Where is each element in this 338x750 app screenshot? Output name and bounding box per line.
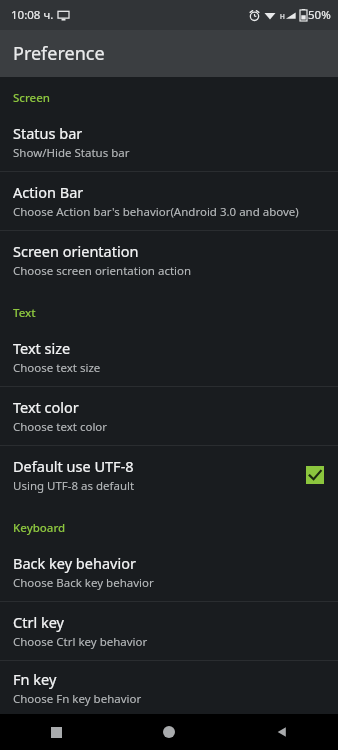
staticText: Default use UTF-8 (13, 456, 134, 476)
button[interactable]: Text color (0, 387, 338, 445)
button[interactable]: Text size (0, 328, 338, 386)
button[interactable]: Default use UTF-8 (0, 446, 338, 504)
staticText: Fn key (13, 669, 57, 689)
staticText: Using UTF-8 as default (13, 478, 135, 494)
button[interactable]: Default use UTF-8 checkbox, checked (306, 466, 324, 484)
staticText: Back key behavior (13, 553, 136, 573)
staticText: Preference (13, 41, 105, 66)
button[interactable]: Recent apps (40, 716, 72, 748)
button[interactable]: Ctrl key (0, 602, 338, 660)
staticText: Text size (13, 338, 71, 358)
staticText: Choose Fn key behavior (13, 691, 142, 707)
staticText: Choose Back key behavior (13, 575, 154, 591)
staticText: Status bar (13, 123, 83, 143)
staticText: Choose text color (13, 419, 108, 435)
button[interactable]: Action Bar (0, 172, 338, 230)
staticText: Choose text size (13, 360, 101, 376)
staticText: 50% (308, 7, 331, 23)
button[interactable]: Back key behavior (0, 543, 338, 601)
staticText: Action Bar (13, 182, 84, 202)
staticText: Choose Action bar's behavior(Android 3.0… (13, 204, 299, 220)
staticText: H (280, 12, 285, 21)
button[interactable]: Back (266, 716, 298, 748)
staticText: Text color (13, 397, 79, 417)
staticText: Show/Hide Status bar (13, 145, 130, 161)
staticText: Ctrl key (13, 612, 64, 632)
staticText: Keyboard (13, 520, 66, 536)
staticText: Text (13, 305, 36, 321)
button[interactable]: Fn key (0, 661, 338, 714)
button[interactable]: Screen orientation (0, 231, 338, 289)
staticText: Choose Ctrl key behavior (13, 634, 148, 650)
staticText: 10:08 ч. (11, 7, 54, 23)
staticText: Choose screen orientation action (13, 263, 192, 279)
button[interactable]: Status bar (0, 113, 338, 171)
button[interactable]: Home (153, 716, 185, 748)
staticText: Screen (13, 90, 51, 106)
staticText: Screen orientation (13, 241, 139, 261)
